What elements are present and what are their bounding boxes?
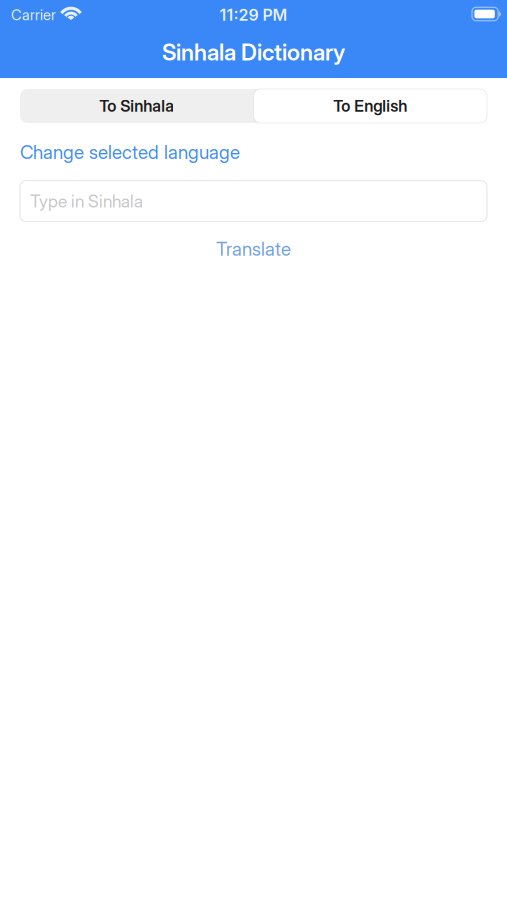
staticText: Translate	[216, 238, 291, 260]
button[interactable]: Translate	[20, 238, 487, 260]
staticText: Change selected language	[20, 141, 240, 164]
button[interactable]: Type in Sinhala	[20, 181, 487, 222]
staticText: To English	[333, 96, 407, 116]
staticText: To Sinhala	[99, 96, 174, 116]
button[interactable]: Change selected language	[20, 141, 240, 164]
button[interactable]: To Sinhala	[20, 89, 253, 123]
button[interactable]: To English	[253, 89, 487, 123]
staticText: Carrier	[11, 6, 56, 24]
staticText: Sinhala Dictionary	[162, 39, 345, 66]
staticText: 11:29 PM	[219, 5, 287, 25]
staticText: Type in Sinhala	[30, 191, 143, 212]
